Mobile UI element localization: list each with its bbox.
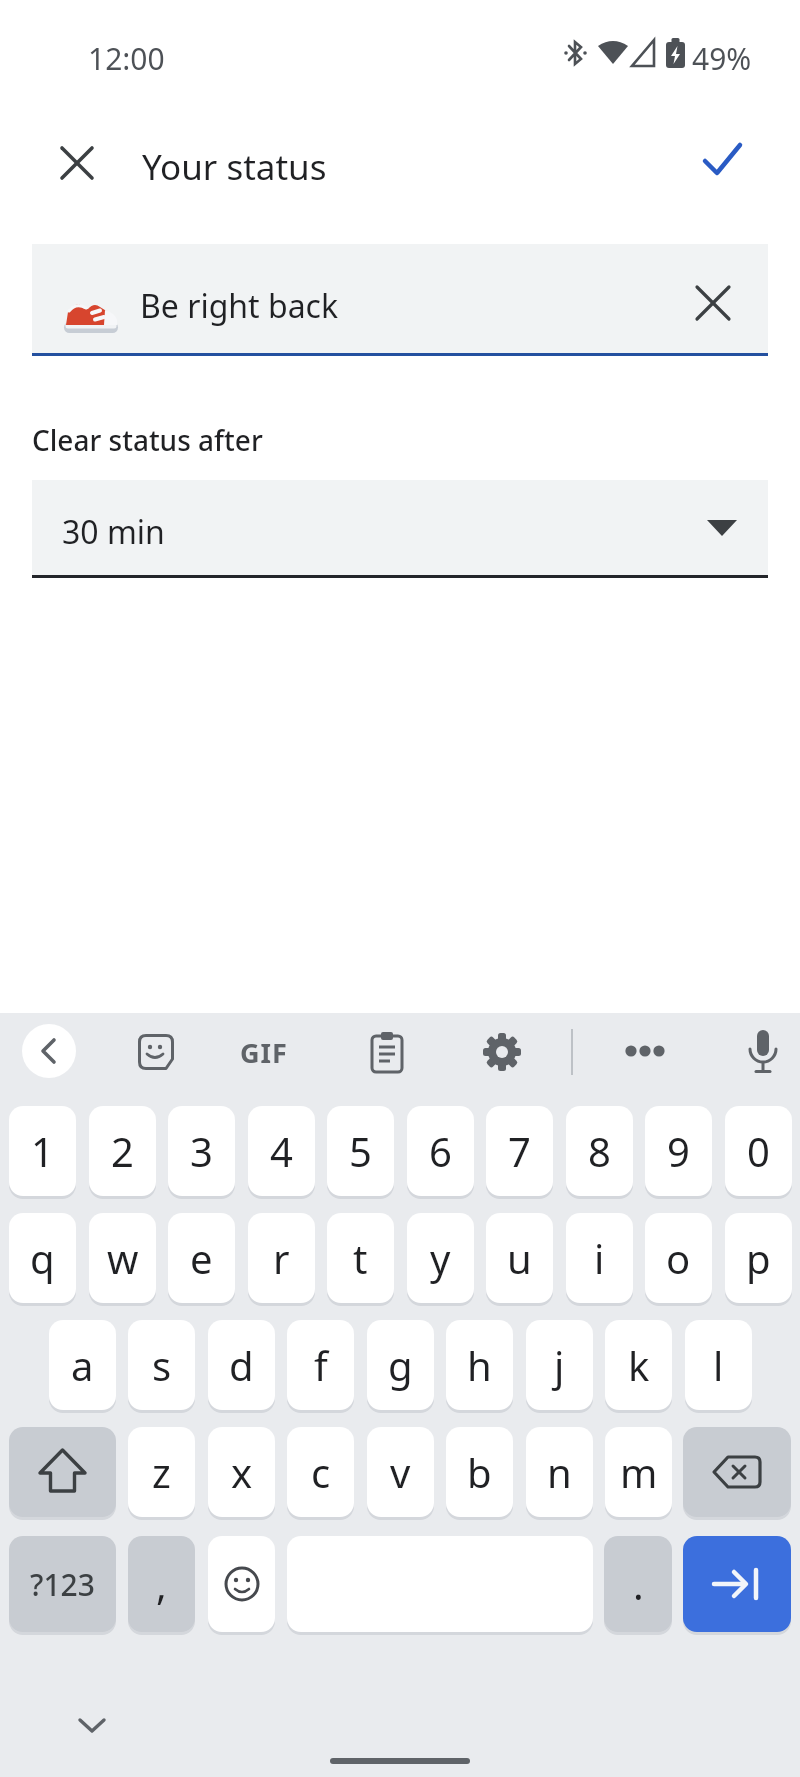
button[interactable]	[744, 1028, 782, 1076]
button[interactable]: e	[168, 1213, 235, 1303]
staticText: s	[152, 1338, 172, 1392]
button[interactable]	[32, 480, 768, 578]
staticText: t	[353, 1231, 368, 1285]
staticText: ,	[156, 1557, 167, 1611]
button[interactable]: f	[287, 1320, 354, 1410]
button[interactable]: w	[89, 1213, 156, 1303]
button[interactable]	[136, 1032, 176, 1072]
staticText: n	[547, 1445, 572, 1499]
button[interactable]: h	[446, 1320, 513, 1410]
button[interactable]	[482, 1031, 522, 1073]
button[interactable]: 6	[407, 1106, 474, 1196]
staticText: k	[628, 1338, 650, 1392]
staticText: 5	[349, 1124, 372, 1178]
button[interactable]	[208, 1536, 275, 1632]
button[interactable]: ?123	[9, 1536, 116, 1632]
button[interactable]: u	[486, 1213, 553, 1303]
staticText: i	[594, 1231, 605, 1285]
staticText: 4	[270, 1124, 293, 1178]
button[interactable]: m	[605, 1427, 672, 1517]
button[interactable]: q	[9, 1213, 76, 1303]
button[interactable]: 8	[566, 1106, 633, 1196]
staticText: g	[388, 1338, 413, 1392]
button[interactable]: 4	[248, 1106, 315, 1196]
button[interactable]: o	[645, 1213, 712, 1303]
button[interactable]	[32, 244, 768, 356]
button[interactable]: j	[526, 1320, 593, 1410]
button[interactable]: v	[367, 1427, 434, 1517]
button[interactable]: i	[566, 1213, 633, 1303]
staticText: 3	[190, 1124, 213, 1178]
staticText: 8	[588, 1124, 611, 1178]
staticText: f	[314, 1338, 328, 1392]
button[interactable]: s	[128, 1320, 195, 1410]
staticText: 1	[31, 1124, 54, 1178]
staticText: v	[390, 1445, 411, 1499]
staticText: w	[107, 1231, 139, 1285]
button[interactable]: n	[526, 1427, 593, 1517]
staticText: 0	[747, 1124, 770, 1178]
button[interactable]: t	[327, 1213, 394, 1303]
staticText: 30 min	[62, 510, 165, 554]
button[interactable]: d	[208, 1320, 275, 1410]
staticText: .	[633, 1557, 644, 1611]
button[interactable]	[9, 1427, 116, 1517]
button[interactable]: x	[208, 1427, 275, 1517]
staticText: b	[467, 1445, 492, 1499]
button[interactable]: 0	[725, 1106, 792, 1196]
button[interactable]: b	[446, 1427, 513, 1517]
button[interactable]: ,	[128, 1536, 195, 1632]
button[interactable]	[683, 1427, 791, 1517]
staticText: Your status	[142, 143, 327, 191]
staticText: d	[229, 1338, 254, 1392]
staticText: a	[71, 1338, 94, 1392]
button[interactable]: .	[604, 1536, 672, 1632]
staticText: GIF	[240, 1034, 288, 1070]
staticText: 7	[508, 1124, 531, 1178]
staticText: 6	[429, 1124, 452, 1178]
button[interactable]	[683, 287, 743, 321]
button[interactable]: 1	[9, 1106, 76, 1196]
button[interactable]: 2	[89, 1106, 156, 1196]
staticText: q	[30, 1231, 55, 1285]
button[interactable]: 9	[645, 1106, 712, 1196]
button[interactable]: 3	[168, 1106, 235, 1196]
button[interactable]: 7	[486, 1106, 553, 1196]
button[interactable]	[620, 1041, 670, 1061]
button[interactable]: z	[128, 1427, 195, 1517]
staticText: o	[666, 1231, 691, 1285]
staticText: h	[467, 1338, 492, 1392]
button[interactable]: c	[287, 1427, 354, 1517]
button[interactable]	[368, 1030, 406, 1074]
staticText: p	[746, 1231, 771, 1285]
button[interactable]: 5	[327, 1106, 394, 1196]
button[interactable]: y	[407, 1213, 474, 1303]
staticText: x	[231, 1445, 253, 1499]
staticText: r	[273, 1231, 290, 1285]
staticText: c	[311, 1445, 331, 1499]
button[interactable]: k	[605, 1320, 672, 1410]
button[interactable]: GIF	[240, 1034, 300, 1070]
staticText: z	[152, 1445, 171, 1499]
staticText: ?123	[30, 1564, 95, 1605]
button[interactable]	[683, 1536, 791, 1632]
button[interactable]	[47, 133, 107, 193]
staticText: j	[554, 1338, 565, 1392]
staticText: y	[430, 1231, 451, 1285]
staticText: u	[507, 1231, 532, 1285]
button[interactable]: l	[685, 1320, 752, 1410]
staticText: Clear status after	[32, 421, 263, 459]
staticText: 12:00	[88, 38, 165, 79]
button[interactable]: g	[367, 1320, 434, 1410]
button[interactable]	[22, 1024, 76, 1078]
button[interactable]: a	[49, 1320, 116, 1410]
staticText: l	[713, 1338, 724, 1392]
button[interactable]	[692, 130, 752, 190]
button[interactable]: r	[248, 1213, 315, 1303]
staticText: 9	[667, 1124, 690, 1178]
staticText: m	[620, 1445, 658, 1499]
button[interactable]: p	[725, 1213, 792, 1303]
staticText: e	[190, 1231, 213, 1285]
staticText: Be right back	[140, 284, 339, 328]
